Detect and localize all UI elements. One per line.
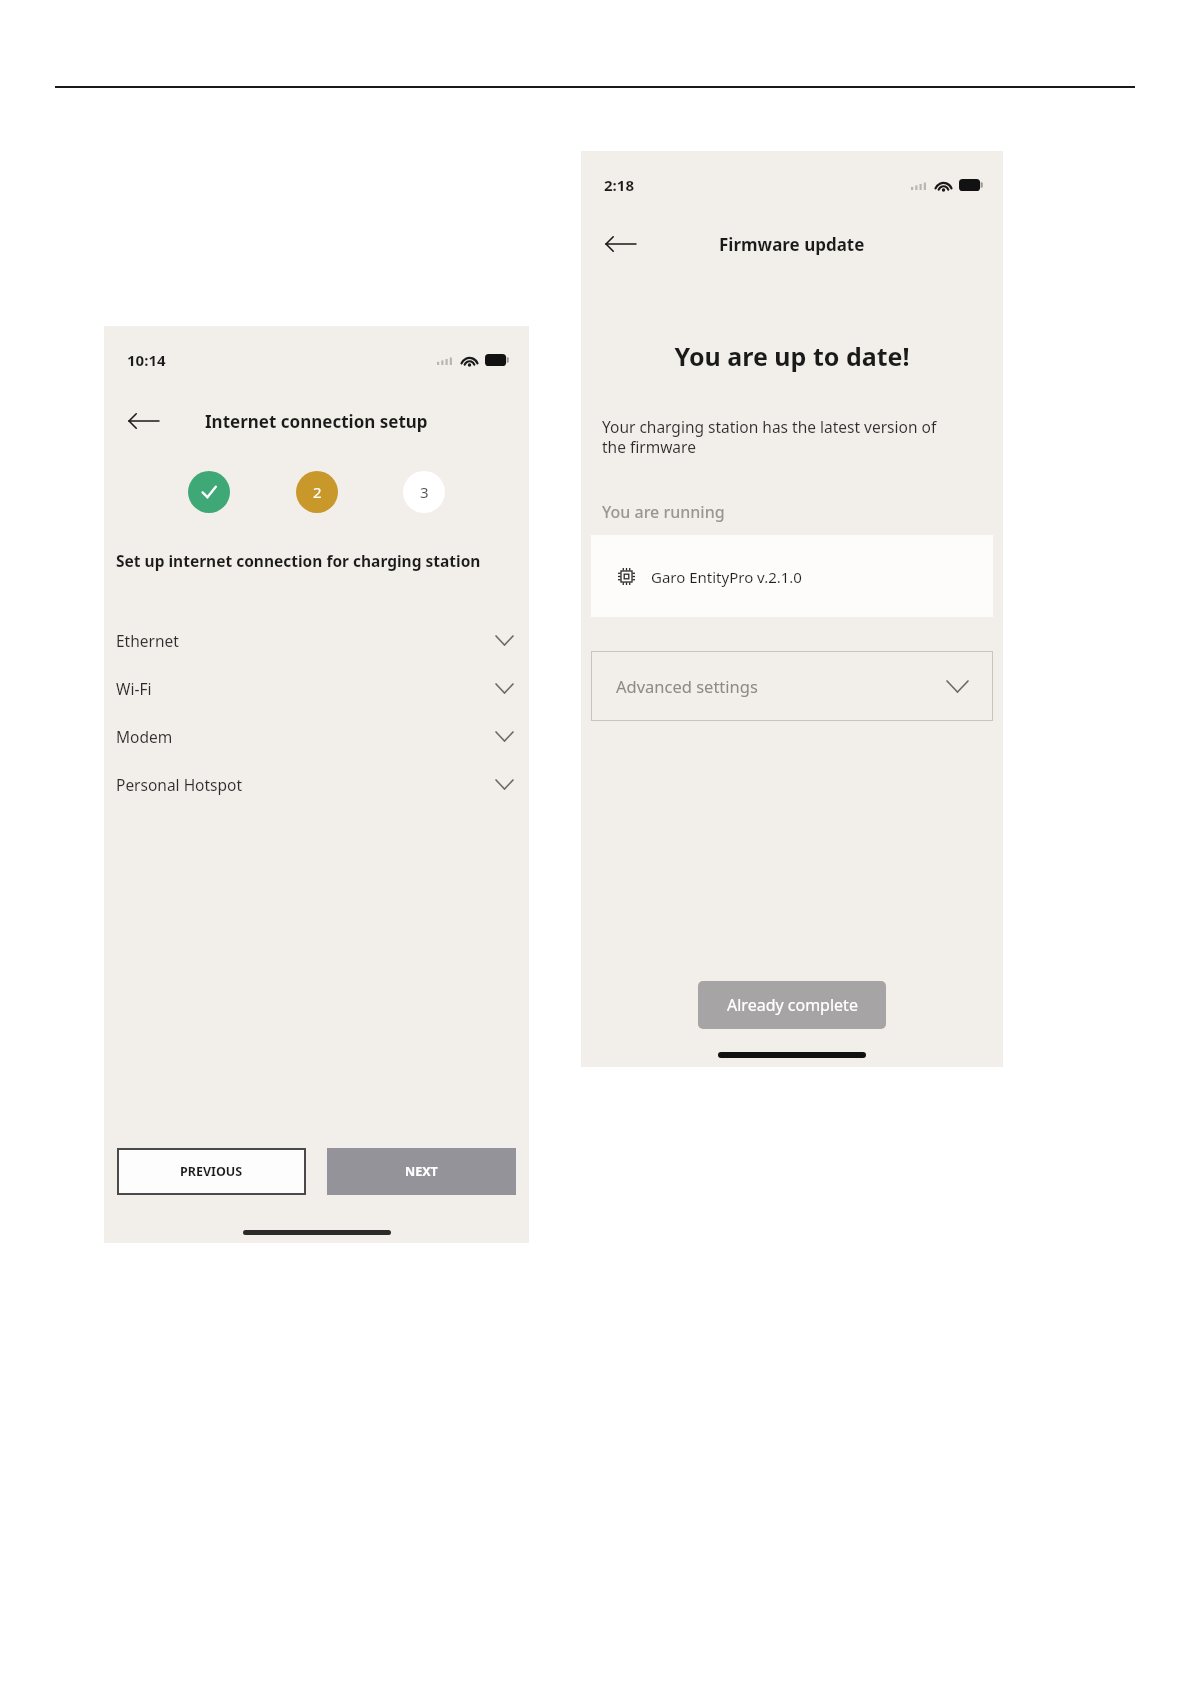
staticText: Advanced settings	[616, 675, 758, 697]
staticText: Ethernet	[116, 630, 179, 651]
button[interactable]: Modem	[104, 714, 529, 758]
staticText: Modem	[116, 726, 173, 747]
staticText: 3	[420, 482, 429, 502]
button[interactable]: Already complete	[698, 981, 886, 1029]
button[interactable]: 3	[403, 471, 445, 513]
button[interactable]: Back	[118, 396, 170, 446]
staticText: PREVIOUS	[180, 1163, 243, 1180]
button[interactable]: Back	[595, 219, 647, 269]
staticText: Personal Hotspot	[116, 774, 243, 795]
staticText: You are running	[602, 501, 725, 523]
button[interactable]: Garo EntityPro v.2.1.0	[591, 535, 993, 617]
staticText: Garo EntityPro v.2.1.0	[651, 567, 802, 587]
staticText: 2:18	[604, 175, 634, 195]
staticText: Set up internet connection for charging …	[116, 550, 481, 571]
button[interactable]: Step completed	[188, 471, 230, 513]
button[interactable]: PREVIOUS	[117, 1148, 306, 1195]
staticText: You are up to date!	[581, 339, 1003, 373]
staticText: 10:14	[127, 350, 166, 370]
staticText: 2	[313, 482, 322, 502]
staticText: Firmware update	[719, 233, 865, 256]
button[interactable]: 2	[296, 471, 338, 513]
staticText: Your charging station has the latest ver…	[602, 416, 937, 458]
staticText: Internet connection setup	[205, 410, 428, 433]
button[interactable]: Ethernet	[104, 618, 529, 662]
staticText: Wi-Fi	[116, 678, 152, 699]
button[interactable]: Personal Hotspot	[104, 762, 529, 806]
button[interactable]: Wi-Fi	[104, 666, 529, 710]
button[interactable]: Advanced settings	[591, 651, 993, 721]
button[interactable]: NEXT	[327, 1148, 516, 1195]
staticText: Already complete	[727, 994, 858, 1016]
staticText: NEXT	[405, 1163, 438, 1180]
